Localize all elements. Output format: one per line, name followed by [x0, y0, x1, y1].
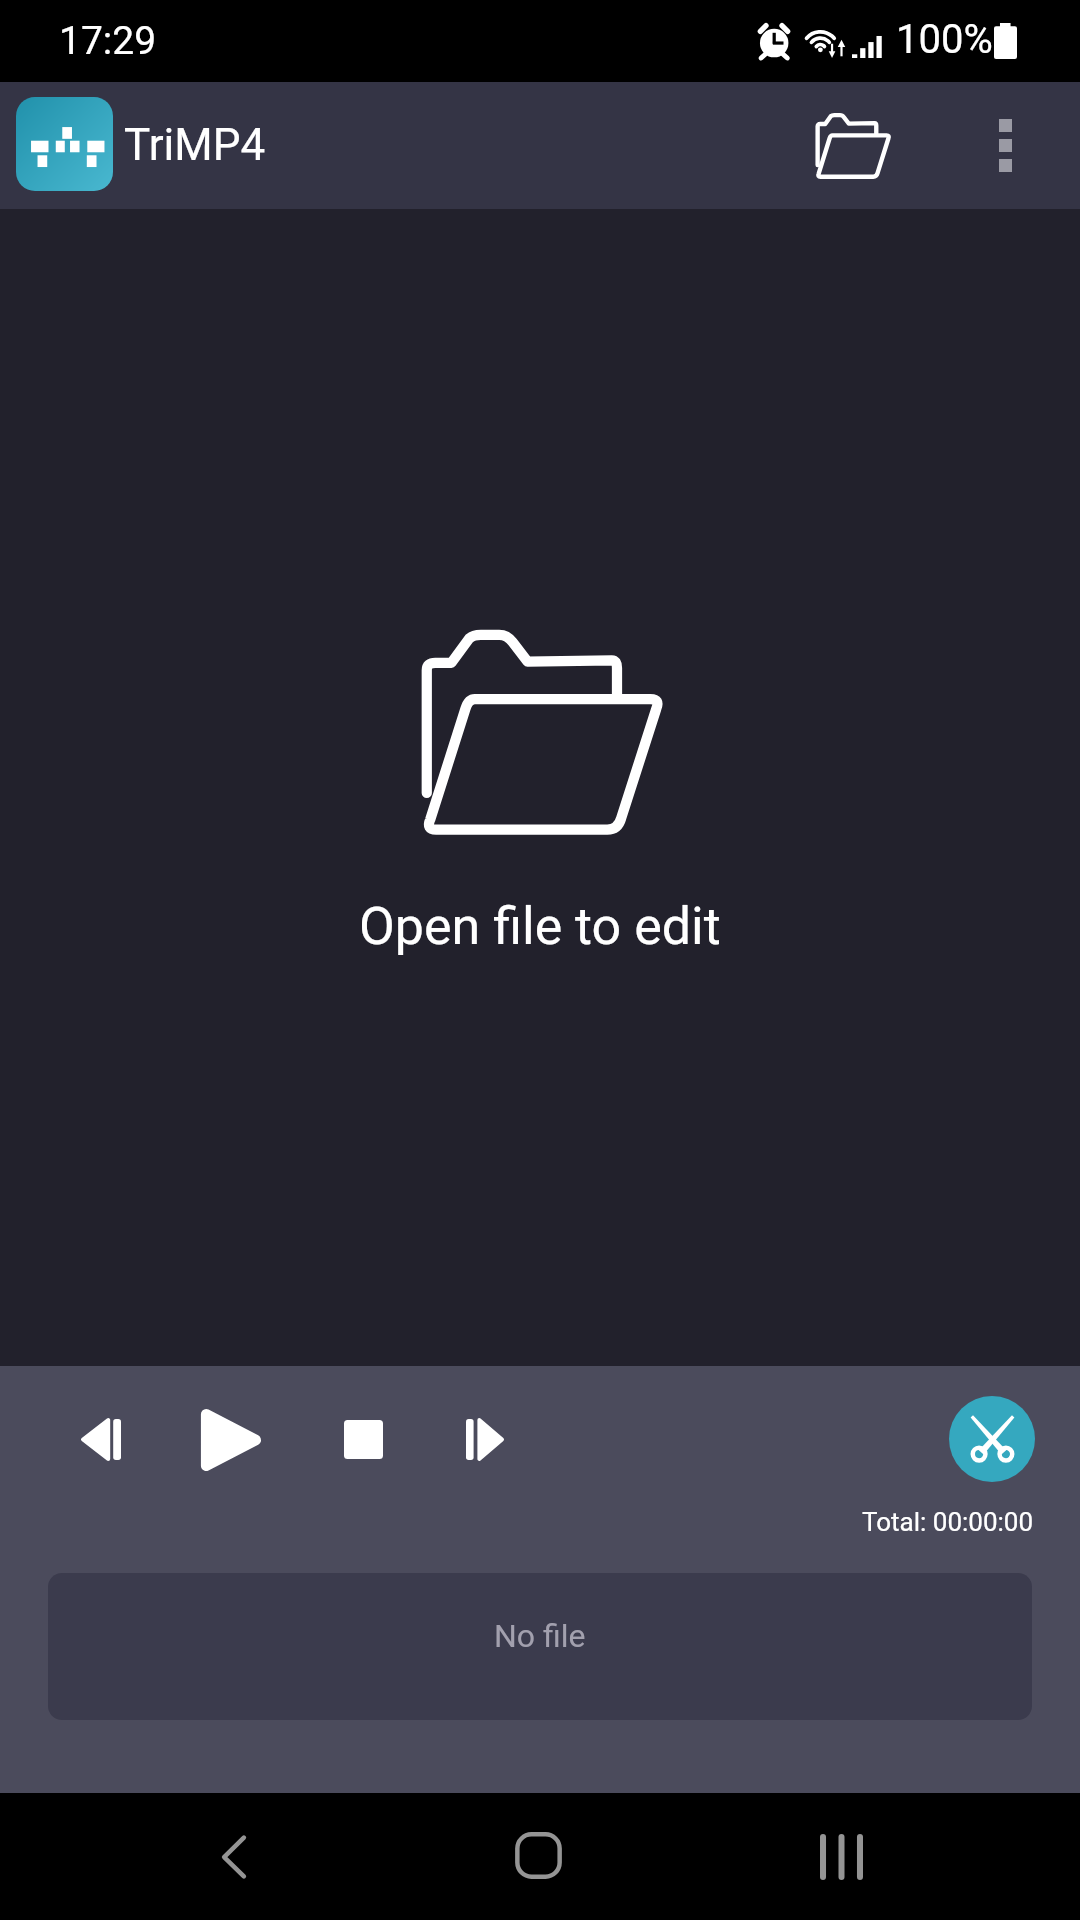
staticText: Open file to edit [359, 896, 721, 957]
button[interactable]: Cut [949, 1396, 1035, 1482]
button[interactable]: Recent apps [781, 1793, 901, 1920]
button[interactable]: Home [478, 1793, 598, 1920]
button[interactable]: Play [190, 1398, 273, 1481]
staticText: TriMP4 [124, 119, 266, 171]
button[interactable]: No file [48, 1573, 1032, 1720]
button[interactable]: Previous frame [59, 1398, 142, 1481]
button[interactable]: Stop [322, 1398, 405, 1481]
button[interactable]: Back [174, 1793, 294, 1920]
staticText: No file [494, 1617, 586, 1655]
button[interactable]: Open file [796, 82, 910, 209]
button[interactable]: More options [957, 82, 1053, 209]
button[interactable]: Next frame [443, 1398, 526, 1481]
staticText: Total: 00:00:00 [862, 1507, 1034, 1537]
staticText: 100% [896, 16, 993, 63]
staticText: 17:29 [59, 18, 157, 64]
